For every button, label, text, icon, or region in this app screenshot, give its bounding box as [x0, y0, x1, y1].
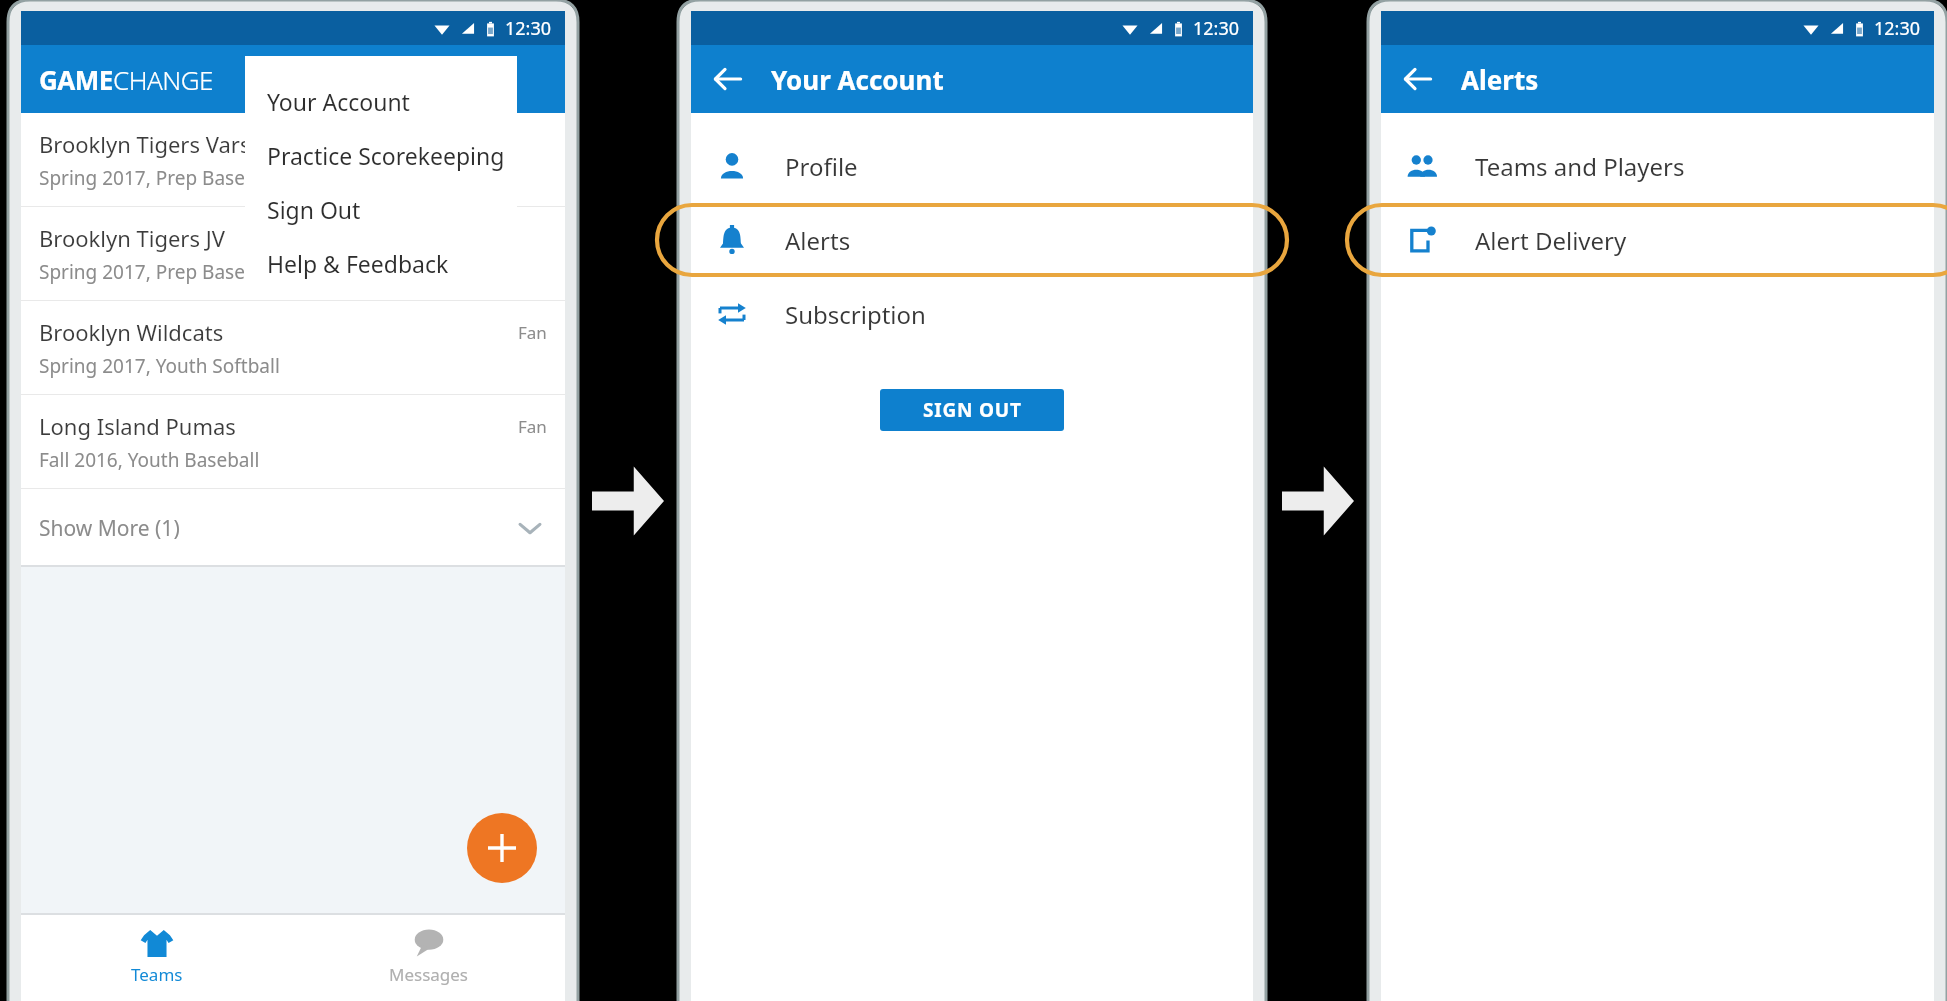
- staticText: Messages: [389, 963, 469, 986]
- staticText: Teams and Players: [1475, 150, 1685, 183]
- button[interactable]: Help & Feedback: [245, 236, 517, 290]
- other: Expand: [517, 515, 543, 541]
- staticText: Sign Out: [267, 194, 361, 225]
- button[interactable]: Show More (1): [21, 489, 565, 567]
- button[interactable]: Teams and Players: [1381, 129, 1934, 203]
- staticText: Fall 2016, Youth Baseball: [39, 447, 260, 473]
- button[interactable]: Subscription: [691, 277, 1253, 351]
- staticText: Spring 2017, Prep Baseball: [39, 259, 278, 285]
- staticText: Long Island Pumas: [39, 411, 236, 441]
- staticText: Alerts: [785, 224, 851, 257]
- staticText: Brooklyn Tigers JV: [39, 223, 225, 253]
- button[interactable]: Practice Scorekeeping: [245, 128, 517, 182]
- staticText: Brooklyn Tigers Varsity: [39, 129, 276, 159]
- button[interactable]: Your Account: [245, 74, 517, 128]
- staticText: 12:30: [1874, 16, 1921, 41]
- staticText: Brooklyn Wildcats: [39, 317, 224, 347]
- staticText: 12:30: [1193, 16, 1240, 41]
- staticText: Help & Feedback: [267, 248, 449, 279]
- staticText: CHANGE: [113, 62, 213, 97]
- staticText: Fan: [518, 415, 547, 438]
- button[interactable]: Brooklyn Wildcats: [21, 301, 565, 395]
- staticText: Fan: [518, 321, 547, 344]
- button[interactable]: SIGN OUT: [880, 389, 1064, 431]
- staticText: Alerts: [1461, 62, 1539, 97]
- button[interactable]: Profile: [691, 129, 1253, 203]
- button[interactable]: Back: [713, 64, 743, 94]
- staticText: Profile: [785, 150, 858, 183]
- button[interactable]: Alerts: [691, 203, 1253, 277]
- button[interactable]: Alert Delivery: [1381, 203, 1934, 277]
- staticText: Show More (1): [39, 514, 180, 543]
- staticText: SIGN OUT: [923, 397, 1022, 423]
- staticText: 12:30: [505, 16, 552, 41]
- button[interactable]: Long Island Pumas: [21, 395, 565, 489]
- staticText: Your Account: [267, 86, 410, 117]
- staticText: Your Account: [771, 62, 944, 97]
- button[interactable]: Brooklyn Tigers JV: [21, 207, 565, 301]
- button[interactable]: Back: [1403, 64, 1433, 94]
- staticText: Teams: [131, 963, 183, 986]
- staticText: Spring 2017, Prep Baseball: [39, 165, 278, 191]
- button[interactable]: Teams: [21, 913, 293, 1001]
- button[interactable]: Sign Out: [245, 182, 517, 236]
- staticText: Subscription: [785, 298, 926, 331]
- staticText: Alert Delivery: [1475, 224, 1627, 257]
- staticText: Practice Scorekeeping: [267, 140, 505, 171]
- button[interactable]: Brooklyn Tigers Varsity: [21, 113, 565, 207]
- staticText: Spring 2017, Youth Softball: [39, 353, 280, 379]
- button[interactable]: Messages: [293, 913, 565, 1001]
- button[interactable]: Add team: [467, 813, 537, 883]
- staticText: GAME: [39, 62, 113, 97]
